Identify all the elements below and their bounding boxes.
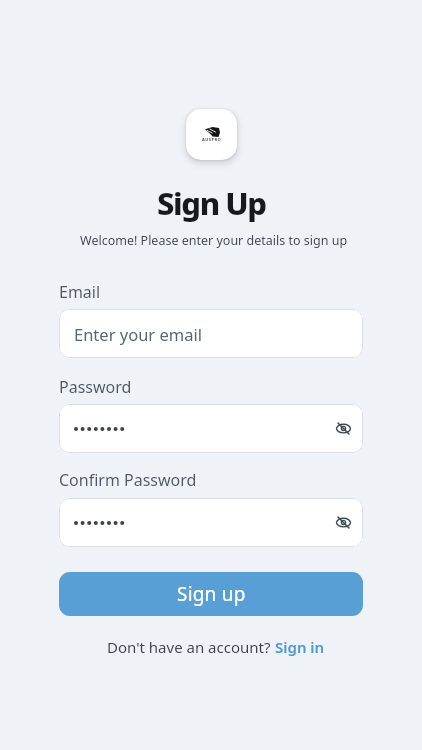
staticText: Don't have an account? [107,637,275,657]
staticText: Sign Up [157,182,266,224]
button[interactable] [59,498,363,547]
button[interactable]: Enter your email [59,309,363,358]
button[interactable] [59,404,363,453]
staticText: Confirm Password [59,469,197,491]
staticText: Sign in [275,637,325,657]
staticText: Sign up [177,581,246,607]
staticText: Welcome! Please enter your details to si… [80,232,348,249]
button[interactable]: Sign in [275,637,325,657]
staticText: AUSPRO [202,137,222,142]
button[interactable]: Sign up [59,572,363,616]
staticText: Password [59,376,132,398]
staticText: Enter your email [74,323,202,345]
staticText: Email [59,281,101,303]
